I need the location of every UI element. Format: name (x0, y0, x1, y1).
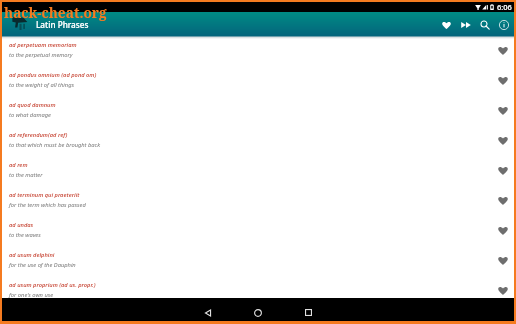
staticText: ad pondus omnium (ad pond om) (9, 71, 97, 79)
staticText: ad terminum qui praeteriit (9, 191, 80, 199)
staticText: ad perpetuam memoriam (9, 41, 77, 49)
button[interactable]: Favorite (489, 66, 514, 96)
button[interactable]: Favorite (489, 276, 514, 298)
staticText: to that which must be brought back (9, 141, 101, 149)
staticText: to the matter (9, 171, 43, 179)
staticText: ad undas (9, 221, 34, 229)
button[interactable]: ad quod damnum (2, 96, 514, 126)
button[interactable]: Favorite (489, 156, 514, 186)
staticText: ad usum proprium (ad us. propr.) (9, 281, 96, 289)
staticText: for the term which has passed (9, 201, 86, 209)
button[interactable]: Next (456, 12, 475, 36)
staticText: to the waves (9, 231, 41, 239)
button[interactable]: Favorite (489, 246, 514, 276)
staticText: ad usum delphini (9, 251, 55, 259)
button[interactable]: Search (475, 12, 494, 36)
button[interactable]: ad rem (2, 156, 514, 186)
button[interactable]: Favorites (437, 12, 456, 36)
staticText: ad quod damnum (9, 101, 56, 109)
staticText: to the weight of all things (9, 81, 74, 89)
button[interactable]: App icon (11, 16, 28, 33)
button[interactable]: ad usum delphini (2, 246, 514, 276)
staticText: to the perpetual memory (9, 51, 73, 59)
button[interactable]: Favorite (489, 96, 514, 126)
button[interactable]: Home (233, 298, 283, 321)
staticText: 6:06 (497, 2, 512, 12)
staticText: for one's own use (9, 291, 54, 298)
staticText: for the use of the Dauphin (9, 261, 76, 269)
button[interactable]: Favorite (489, 186, 514, 216)
button[interactable]: ad undas (2, 216, 514, 246)
staticText: ad rem (9, 161, 28, 169)
button[interactable]: Favorite (489, 126, 514, 156)
button[interactable]: ad perpetuam memoriam (2, 36, 514, 66)
button[interactable]: ad terminum qui praeteriit (2, 186, 514, 216)
staticText: hack-cheat.org (4, 3, 107, 22)
button[interactable]: Info (494, 12, 513, 36)
button[interactable]: ad pondus omnium (ad pond om) (2, 66, 514, 96)
staticText: ad referendum(ad ref) (9, 131, 68, 139)
staticText: Latin Phrases (36, 19, 89, 30)
button[interactable]: ad referendum(ad ref) (2, 126, 514, 156)
button[interactable]: Favorite (489, 216, 514, 246)
button[interactable]: ad usum proprium (ad us. propr.) (2, 276, 514, 298)
button[interactable]: Back (183, 298, 233, 321)
button[interactable]: Recents (283, 298, 333, 321)
staticText: to what damage (9, 111, 51, 119)
button[interactable]: Favorite (489, 36, 514, 66)
